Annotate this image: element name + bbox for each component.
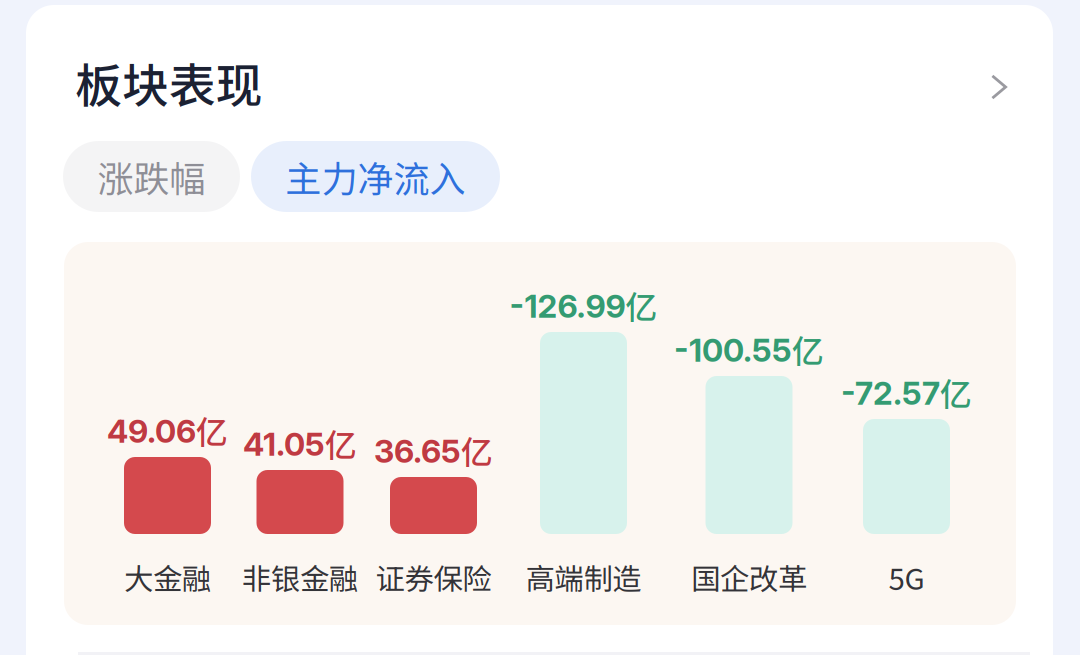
staticText: -72.57亿 bbox=[841, 369, 972, 415]
staticText: -100.55亿 bbox=[674, 326, 824, 372]
staticText: 5G bbox=[888, 556, 924, 598]
staticText: 国企改革 bbox=[691, 556, 807, 598]
button[interactable]: 涨跌幅 bbox=[63, 141, 240, 212]
button[interactable]: 主力净流入 bbox=[251, 141, 500, 212]
staticText: 涨跌幅 bbox=[97, 150, 205, 202]
staticText: 主力净流入 bbox=[285, 150, 465, 202]
staticText: 非银金融 bbox=[242, 556, 358, 598]
staticText: 49.06亿 bbox=[107, 407, 228, 453]
staticText: 36.65亿 bbox=[374, 427, 493, 473]
staticText: 41.05亿 bbox=[243, 420, 357, 466]
staticText: 板块表现 bbox=[75, 49, 263, 116]
staticText: 证券保险 bbox=[375, 556, 491, 598]
button[interactable]: 板块表现 bbox=[75, 46, 1007, 118]
staticText: -126.99亿 bbox=[509, 282, 657, 328]
staticText: 高端制造 bbox=[525, 556, 641, 598]
staticText: 大金融 bbox=[124, 556, 211, 598]
